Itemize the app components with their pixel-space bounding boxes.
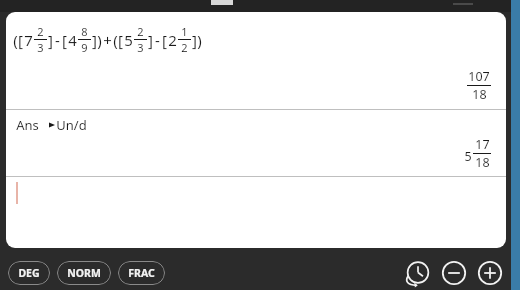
staticText: [	[18, 30, 23, 50]
staticText: NORM	[67, 266, 101, 280]
staticText: [	[118, 30, 123, 50]
staticText: Un/d	[56, 116, 87, 134]
staticText: ]	[48, 30, 53, 50]
staticText: -	[155, 30, 160, 50]
button[interactable]: FRAC	[118, 261, 165, 285]
staticText: 2	[37, 24, 44, 39]
staticText: 4	[68, 30, 77, 50]
button[interactable]: Zoom out	[440, 259, 468, 287]
staticText: (	[13, 30, 18, 50]
staticText: )	[197, 30, 202, 50]
staticText: 2	[181, 40, 188, 55]
staticText: )	[97, 30, 102, 50]
staticText: [	[62, 30, 67, 50]
button[interactable]: History	[404, 259, 432, 287]
staticText: 1	[181, 24, 188, 39]
staticText: 2	[168, 30, 177, 50]
button[interactable]: Zoom in	[476, 259, 504, 287]
staticText: 3	[137, 40, 144, 55]
staticText: -	[55, 30, 60, 50]
button[interactable]: DEG	[8, 261, 50, 285]
staticText: 18	[475, 154, 490, 171]
staticText: ]	[192, 30, 197, 50]
staticText: 5	[464, 148, 472, 165]
staticText: 3	[37, 40, 44, 55]
staticText: 17	[475, 136, 490, 153]
button[interactable]: NORM	[57, 261, 111, 285]
staticText: ]	[92, 30, 97, 50]
staticText: 9	[81, 40, 88, 55]
staticText: +	[103, 30, 112, 50]
staticText: 7	[24, 30, 33, 50]
staticText: ]	[148, 30, 153, 50]
staticText: 107	[468, 68, 490, 85]
staticText: Ans	[16, 116, 39, 134]
staticText: 8	[81, 24, 88, 39]
staticText: 18	[472, 86, 487, 103]
staticText: 5	[124, 30, 133, 50]
staticText: [	[162, 30, 167, 50]
staticText: 2	[137, 24, 144, 39]
staticText: FRAC	[128, 266, 155, 280]
staticText: (	[113, 30, 118, 50]
staticText: DEG	[18, 266, 40, 280]
